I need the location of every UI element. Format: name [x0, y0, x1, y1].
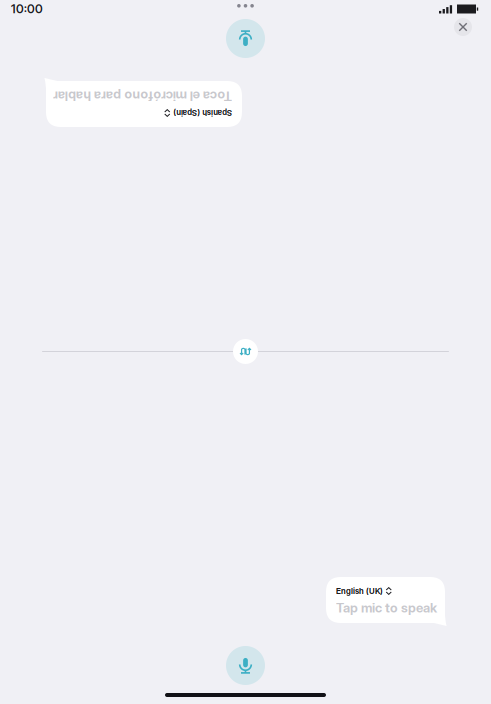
staticText: Tap mic to speak	[336, 600, 437, 616]
staticText: 10:00	[11, 2, 43, 16]
button[interactable]: Start speaking	[226, 646, 265, 685]
button[interactable]: Close	[454, 18, 472, 36]
staticText: English (UK)	[336, 586, 383, 596]
button[interactable]: English (UK)	[326, 577, 445, 626]
button[interactable]: Swap languages	[233, 339, 258, 364]
